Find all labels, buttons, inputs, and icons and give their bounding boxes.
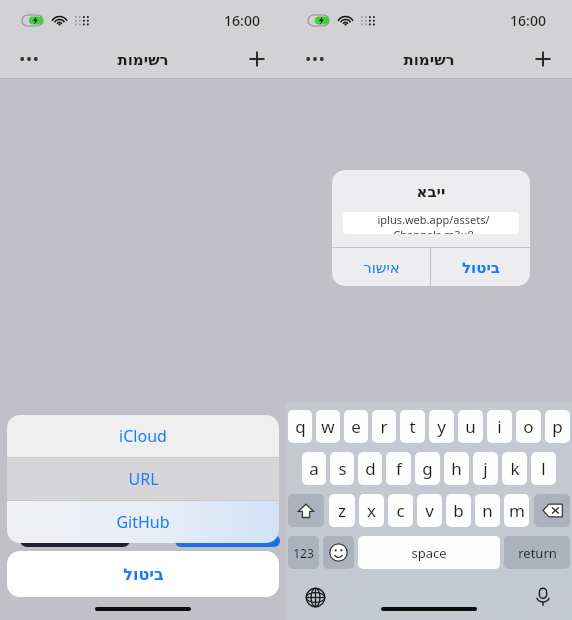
button[interactable]: n [475,494,500,527]
staticText: d [365,457,376,480]
button[interactable]: b [446,494,471,527]
staticText: j [483,457,488,480]
staticText: q [295,415,306,438]
staticText: return [518,544,557,562]
button[interactable]: e [344,410,368,443]
staticText: l [541,457,546,480]
staticText: i [497,415,502,438]
staticText: 16:00 [224,11,260,30]
button[interactable]: Add [524,40,562,78]
button[interactable]: m [504,494,529,527]
staticText: c [396,499,405,522]
staticText: URL [128,468,159,490]
staticText: y [437,415,446,438]
button[interactable]: d [358,452,382,485]
button[interactable]: Change keyboard [300,582,330,612]
staticText: space [411,544,447,562]
staticText: h [451,457,462,480]
button[interactable]: c [388,494,413,527]
button[interactable]: k [502,452,527,485]
button[interactable]: return [504,536,570,569]
button[interactable]: URL [7,458,279,500]
staticText: x [367,499,376,522]
button[interactable]: t [400,410,425,443]
staticText: v [425,499,434,522]
staticText: o [523,415,534,438]
button[interactable]: x [359,494,384,527]
staticText: t [409,415,416,438]
button[interactable]: v [417,494,442,527]
button[interactable]: j [473,452,498,485]
button[interactable]: GitHub [7,501,279,543]
button[interactable]: r [372,410,396,443]
staticText: רשימות [117,51,169,68]
button[interactable]: Add [238,40,276,78]
staticText: b [453,499,464,522]
staticText: GitHub [116,511,170,533]
staticText: רשימות [403,51,455,68]
button[interactable]: ביטול [431,248,530,286]
button[interactable]: Dictate [528,582,558,612]
button[interactable]: o [516,410,541,443]
staticText: a [309,457,319,480]
staticText: ביטול [462,259,500,276]
button[interactable]: iCloud [7,415,279,457]
staticText: r [380,415,388,438]
staticText: k [510,457,520,480]
staticText: iCloud [119,425,167,447]
button[interactable]: z [329,494,355,527]
button[interactable]: More options [296,40,334,78]
button[interactable]: iplus.web.app/assets/Channels.m3u8 [343,212,519,234]
button[interactable]: More options [10,40,48,78]
button[interactable]: Emoji [323,536,354,569]
button[interactable]: ביטול [7,551,279,597]
staticText: n [482,499,493,522]
button[interactable]: Shift [288,494,324,527]
button[interactable]: space [358,536,500,569]
staticText: iplus.web.app/assets/Channels.m3u8 [348,212,519,234]
staticText: s [338,457,347,480]
button[interactable]: p [545,410,570,443]
button[interactable]: g [415,452,440,485]
button[interactable]: y [429,410,454,443]
staticText: ביטול [123,565,164,584]
button[interactable]: l [531,452,556,485]
staticText: אישור [363,259,400,276]
staticText: w [321,415,335,438]
button[interactable]: w [316,410,340,443]
staticText: u [465,415,476,438]
button[interactable]: a [302,452,326,485]
staticText: m [509,499,525,522]
staticText: f [396,457,402,480]
button[interactable]: Backspace [534,494,570,527]
button[interactable]: h [444,452,469,485]
button[interactable]: 123 [288,536,319,569]
staticText: 16:00 [510,11,546,30]
staticText: g [422,457,433,480]
staticText: ייבא [332,183,530,200]
staticText: 123 [293,545,314,561]
button[interactable]: q [288,410,312,443]
staticText: z [338,499,346,522]
staticText: p [552,415,563,438]
staticText: e [351,415,361,438]
button[interactable]: אישור [332,248,430,286]
button[interactable]: i [487,410,512,443]
button[interactable]: s [330,452,354,485]
button[interactable]: f [386,452,411,485]
button[interactable]: u [458,410,483,443]
